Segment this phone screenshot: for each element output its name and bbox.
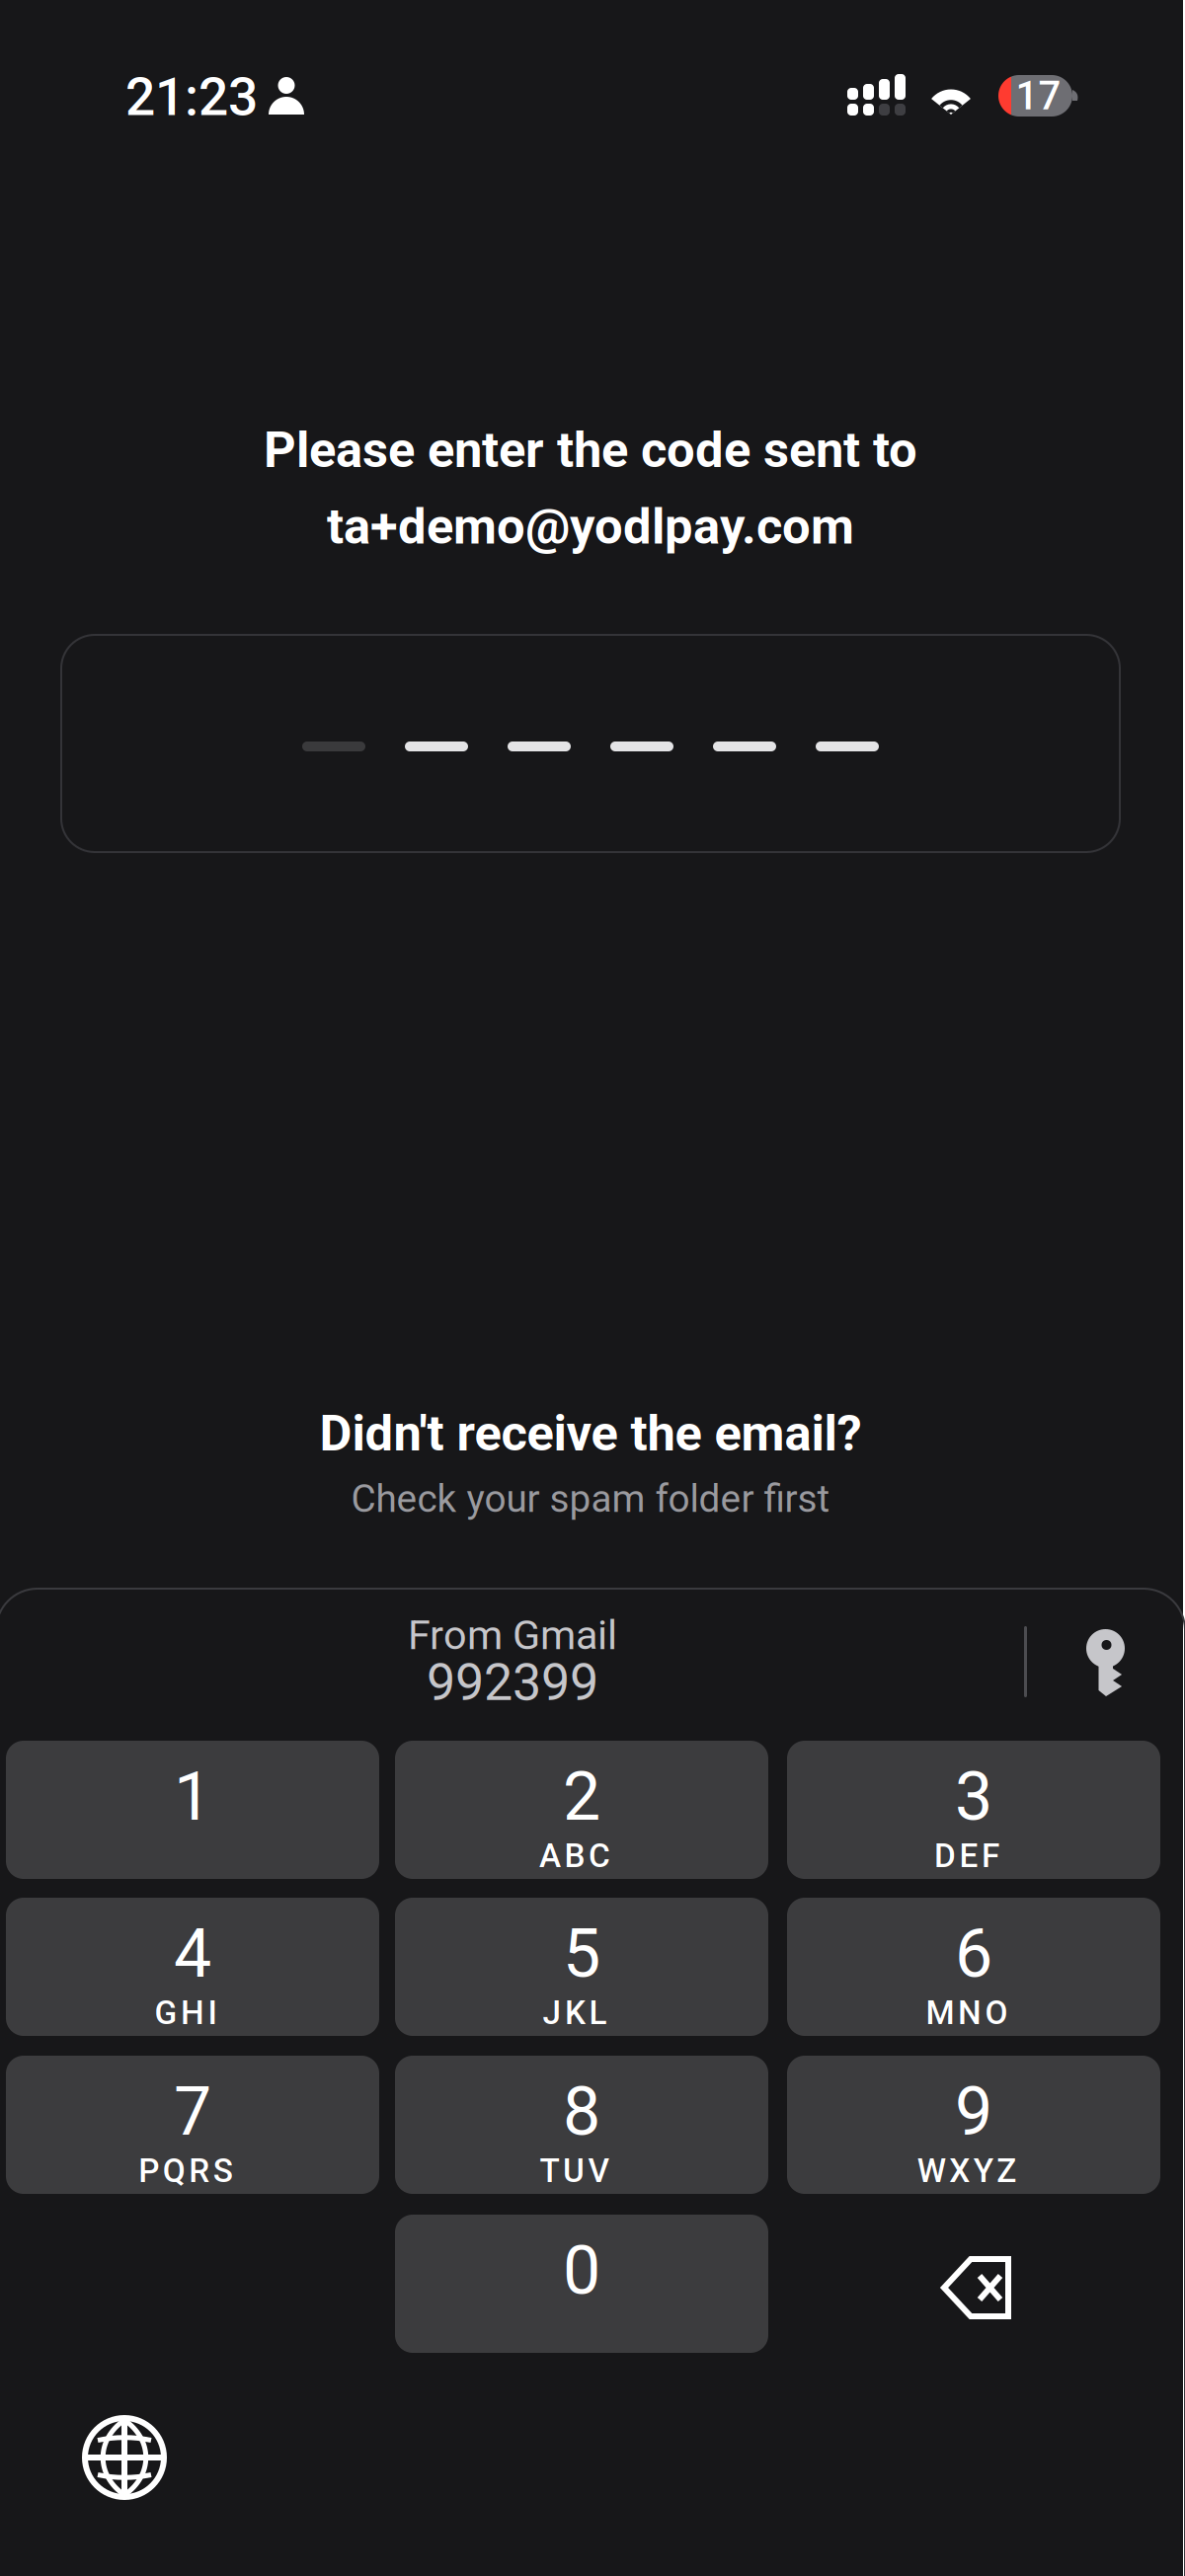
- staticText: 4: [174, 1914, 211, 1993]
- staticText: Please enter the code sent to: [264, 421, 917, 479]
- staticText: PQRS: [138, 2151, 233, 2190]
- button[interactable]: 8: [395, 2056, 768, 2194]
- staticText: 8: [563, 2072, 600, 2151]
- staticText: 992399: [427, 1652, 598, 1712]
- staticText: WXYZ: [917, 2151, 1016, 2190]
- button[interactable]: 1: [6, 1741, 379, 1879]
- staticText: From Gmail: [408, 1611, 617, 1659]
- staticText: 21:23: [125, 66, 258, 128]
- staticText: TUV: [540, 2151, 610, 2190]
- staticText: 1: [174, 1757, 211, 1836]
- button[interactable]: Next keyboard: [77, 2410, 172, 2505]
- button[interactable]: Delete: [790, 2219, 1163, 2357]
- staticText: Check your spam folder first: [351, 1476, 830, 1521]
- button[interactable]: Passwords: [1062, 1618, 1150, 1707]
- button[interactable]: 7: [6, 2056, 379, 2194]
- staticText: 9: [955, 2072, 992, 2151]
- staticText: 2: [563, 1757, 600, 1836]
- button[interactable]: 3: [787, 1741, 1160, 1879]
- button[interactable]: 6: [787, 1898, 1160, 2036]
- staticText: ABC: [539, 1836, 610, 1875]
- button[interactable]: 2: [395, 1741, 768, 1879]
- button[interactable]: 5: [395, 1898, 768, 2036]
- staticText: 7: [174, 2072, 211, 2151]
- button[interactable]: From Gmail: [167, 1605, 858, 1716]
- staticText: GHI: [155, 1993, 217, 2032]
- staticText: Didn't receive the email?: [319, 1404, 862, 1463]
- button[interactable]: 4: [6, 1898, 379, 2036]
- staticText: ta+demo@yodlpay.com: [327, 497, 854, 556]
- staticText: DEF: [934, 1836, 999, 1875]
- staticText: 3: [955, 1757, 992, 1836]
- staticText: MNO: [926, 1993, 1008, 2032]
- staticText: JKL: [543, 1993, 607, 2032]
- button[interactable]: 0: [395, 2215, 768, 2353]
- staticText: 6: [955, 1914, 992, 1993]
- staticText: 17: [1016, 73, 1061, 119]
- staticText: 5: [563, 1914, 600, 1993]
- staticText: 0: [563, 2231, 600, 2310]
- button[interactable]: 9: [787, 2056, 1160, 2194]
